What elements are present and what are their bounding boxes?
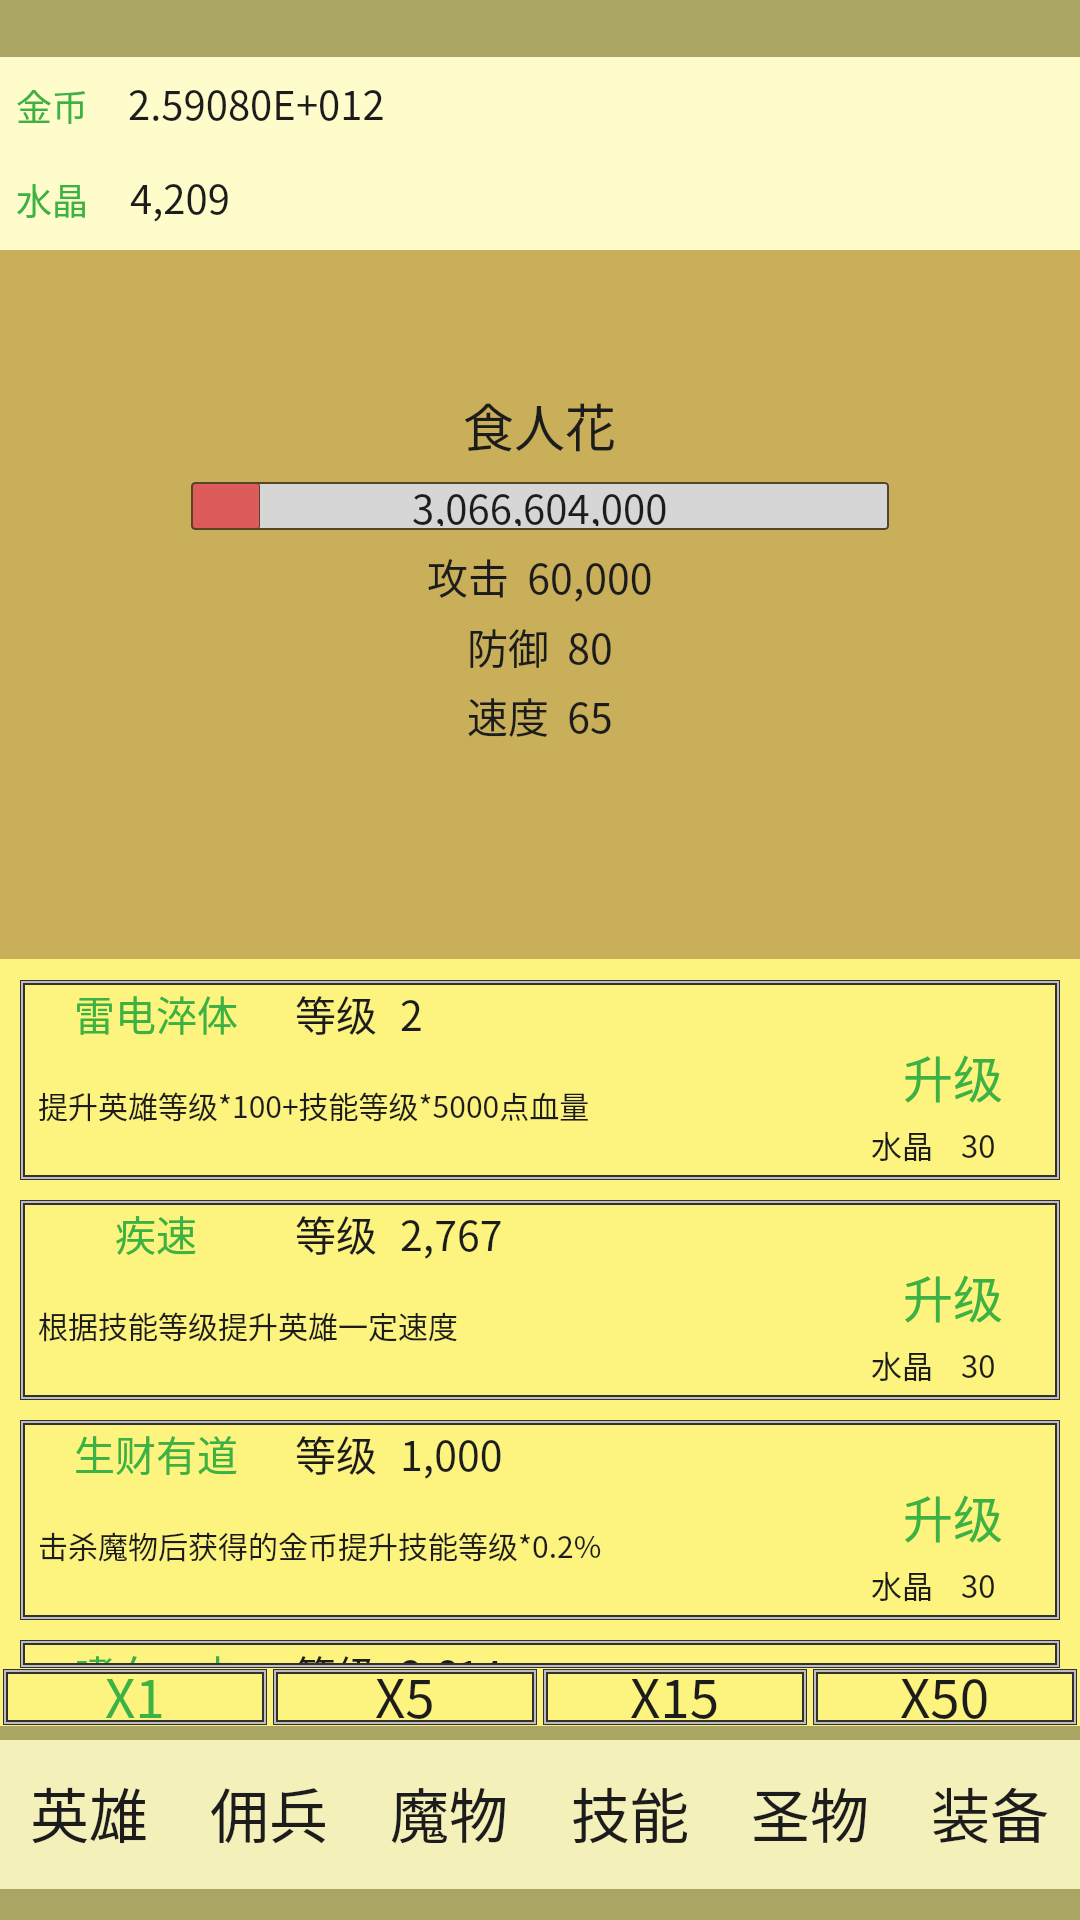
staticText: 金币 [16,79,89,131]
staticText: 2,614 [400,1643,503,1665]
button[interactable]: X1 [6,1672,264,1722]
button[interactable]: 技能 [565,1764,696,1865]
staticText: X15 [630,1657,720,1734]
staticText: 30 [961,1562,996,1607]
staticText: 升级 [903,1480,1003,1552]
staticText: 击杀魔物后获得的金币提升技能等级*0.2% [38,1523,602,1566]
staticText: 水晶 [871,1122,933,1167]
button[interactable]: 嗜血一击 [23,1643,1057,1665]
staticText: 防御 80 [467,616,613,675]
staticText: 圣物 [751,1770,870,1855]
staticText: 根据技能等级提升英雄一定速度 [38,1303,458,1346]
button[interactable]: 佣兵 [204,1764,335,1865]
button[interactable]: 雷电淬体 [23,983,1057,1177]
button[interactable]: 升级 [859,1027,1049,1144]
staticText: 30 [961,1342,996,1387]
staticText: 食人花 [463,388,617,462]
staticText: 3,066,604,000 [412,482,668,526]
staticText: 嗜血一击 [74,1643,238,1665]
staticText: 30 [961,1122,996,1167]
staticText: 1,000 [400,1423,503,1482]
button[interactable]: 升级 [859,1247,1049,1364]
staticText: X5 [375,1657,435,1734]
staticText: 水晶 [871,1562,933,1607]
staticText: 水晶 [871,1342,933,1387]
button[interactable]: X50 [816,1672,1074,1722]
staticText: 装备 [931,1770,1050,1855]
staticText: 攻击 60,000 [427,546,653,605]
button[interactable]: 升级 [859,1467,1049,1584]
staticText: 2 [400,983,423,1042]
button[interactable]: 英雄 [24,1764,155,1865]
staticText: 魔物 [390,1770,509,1855]
staticText: 雷电淬体 [74,983,238,1042]
button[interactable]: 装备 [925,1764,1056,1865]
staticText: 提升英雄等级*100+技能等级*5000点血量 [38,1083,590,1126]
staticText: 水晶 [16,173,89,225]
staticText: 英雄 [30,1770,149,1855]
staticText: 等级 [295,983,377,1042]
button[interactable]: X15 [546,1672,804,1722]
button[interactable]: 圣物 [745,1764,876,1865]
staticText: 4,209 [130,168,230,226]
staticText: 2.59080E+012 [128,74,385,132]
button[interactable]: X5 [276,1672,534,1722]
staticText: 技能 [571,1770,690,1855]
button[interactable]: 魔物 [384,1764,515,1865]
staticText: 等级 [295,1643,377,1665]
staticText: 升级 [903,1040,1003,1112]
staticText: 2,767 [400,1203,503,1262]
button[interactable]: 生财有道 [23,1423,1057,1617]
staticText: 等级 [295,1203,377,1262]
staticText: 生财有道 [74,1423,238,1482]
staticText: X1 [105,1657,165,1734]
staticText: X50 [900,1657,990,1734]
staticText: 等级 [295,1423,377,1482]
staticText: 佣兵 [210,1770,329,1855]
staticText: 升级 [903,1260,1003,1332]
button[interactable]: 疾速 [23,1203,1057,1397]
staticText: 疾速 [115,1203,197,1262]
staticText: 速度 65 [467,685,613,744]
